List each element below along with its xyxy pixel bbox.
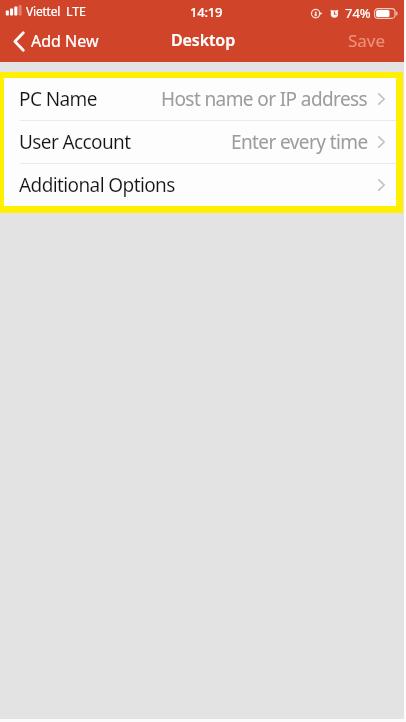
staticText: Viettel	[26, 3, 61, 19]
staticText: User Account	[19, 129, 131, 155]
button[interactable]: Add New	[0, 26, 109, 56]
staticText: LTE	[66, 3, 86, 20]
staticText: 74%	[345, 4, 371, 22]
button[interactable]: User Account	[4, 121, 396, 163]
staticText: Additional Options	[19, 172, 175, 198]
button[interactable]: PC Name	[4, 78, 396, 120]
staticText: Enter every time	[231, 129, 368, 155]
staticText: Add New	[31, 30, 99, 52]
staticText: Host name or IP address	[161, 86, 368, 112]
staticText: 14:19	[190, 3, 223, 21]
staticText: PC Name	[19, 86, 97, 112]
button[interactable]: Save	[336, 25, 406, 56]
staticText: Desktop	[171, 29, 236, 51]
button[interactable]: Additional Options	[4, 164, 396, 206]
